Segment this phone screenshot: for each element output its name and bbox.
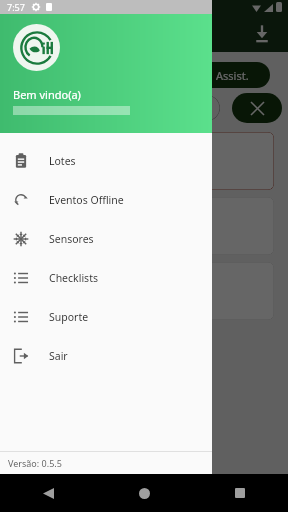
staticText: Sair <box>49 349 68 363</box>
staticText: Assist. <box>216 68 249 83</box>
button[interactable] <box>18 197 274 255</box>
button[interactable] <box>0 0 288 474</box>
button[interactable]: Assist. <box>120 62 270 88</box>
button[interactable]: Home <box>131 480 157 506</box>
staticText: Bem vindo(a) <box>13 87 81 102</box>
button[interactable]: Sair <box>0 336 212 375</box>
staticText: Sensores <box>49 232 94 246</box>
staticText: Lotes <box>49 154 76 168</box>
staticText: Suporte <box>49 310 89 324</box>
button[interactable]: Suporte <box>0 297 212 336</box>
button[interactable]: Eventos Offline <box>0 180 212 219</box>
button[interactable]: Checklists <box>0 258 212 297</box>
staticText: Eventos Offline <box>49 193 124 207</box>
button[interactable]: Download <box>250 21 274 45</box>
button[interactable]: Sensores <box>0 219 212 258</box>
staticText: 7:57 <box>7 1 25 13</box>
button[interactable] <box>160 95 220 121</box>
button[interactable]: Back <box>35 480 61 506</box>
button[interactable]: Recent apps <box>227 480 253 506</box>
staticText: Checklists <box>49 271 98 285</box>
button[interactable]: Close <box>232 93 282 123</box>
button[interactable]: Lotes <box>0 141 212 180</box>
staticText: Versão: 0.5.5 <box>8 457 62 469</box>
button[interactable] <box>18 262 274 320</box>
button[interactable] <box>18 132 274 190</box>
